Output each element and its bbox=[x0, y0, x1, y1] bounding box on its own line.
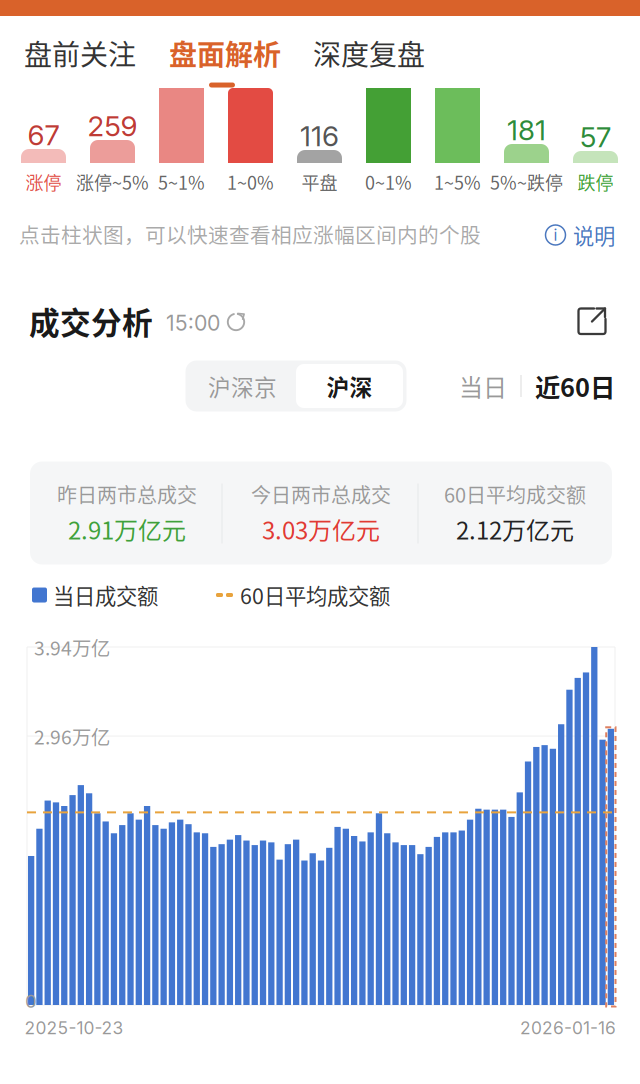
staticText: 当日 bbox=[459, 369, 507, 403]
staticText: 3.03万亿元 bbox=[262, 512, 380, 546]
staticText: 0 bbox=[25, 990, 37, 1012]
staticText: 平盘 bbox=[301, 169, 337, 195]
button[interactable]: 盘前关注 bbox=[12, 22, 148, 84]
staticText: 涨停~5% bbox=[76, 169, 149, 195]
button[interactable]: 5~1% bbox=[159, 83, 204, 163]
button[interactable]: 当日 bbox=[453, 364, 513, 408]
staticText: 沪深京 bbox=[208, 370, 277, 402]
staticText: 1~5% bbox=[434, 169, 481, 195]
staticText: 60日平均成交额 bbox=[240, 580, 390, 610]
button[interactable]: 深度复盘 bbox=[301, 22, 437, 84]
button[interactable]: i bbox=[537, 215, 623, 255]
staticText: 说明 bbox=[573, 220, 615, 250]
staticText: 2026-01-16 bbox=[520, 1017, 616, 1038]
staticText: 当日成交额 bbox=[53, 580, 158, 610]
button[interactable]: 涨停 bbox=[21, 149, 66, 163]
staticText: 259 bbox=[87, 109, 137, 143]
staticText: 近60日 bbox=[535, 368, 615, 404]
staticText: 116 bbox=[300, 119, 339, 153]
button[interactable]: 1~0% bbox=[228, 88, 273, 163]
staticText: 60日平均成交额 bbox=[444, 480, 586, 509]
button[interactable]: 涨停~5% bbox=[90, 140, 135, 163]
staticText: 2.12万亿元 bbox=[456, 512, 574, 546]
staticText: 181 bbox=[507, 113, 546, 147]
staticText: 昨日两市总成交 bbox=[57, 480, 197, 509]
staticText: 今日两市总成交 bbox=[251, 480, 391, 509]
staticText: 沪深 bbox=[326, 370, 372, 402]
staticText: 0~1% bbox=[365, 169, 412, 195]
button[interactable]: 平盘 bbox=[297, 150, 342, 163]
staticText: i bbox=[553, 225, 557, 245]
staticText: 2.91万亿元 bbox=[68, 512, 186, 546]
button[interactable]: 1~5% bbox=[435, 83, 480, 163]
staticText: 15:00 bbox=[166, 310, 220, 336]
staticText: 2.96万亿 bbox=[34, 722, 110, 750]
staticText: 跌停 bbox=[577, 169, 613, 195]
button[interactable]: 近60日 bbox=[533, 364, 617, 408]
button[interactable]: 沪深 bbox=[296, 364, 403, 408]
staticText: 3.94万亿 bbox=[34, 633, 110, 661]
staticText: 5~1% bbox=[158, 169, 205, 195]
staticText: 2025-10-23 bbox=[24, 1017, 123, 1038]
staticText: 深度复盘 bbox=[313, 33, 425, 73]
staticText: 67 bbox=[27, 118, 59, 152]
staticText: 5%~跌停 bbox=[490, 169, 563, 195]
staticText: 57 bbox=[580, 120, 611, 154]
button[interactable]: 5%~跌停 bbox=[504, 144, 549, 163]
button[interactable]: 分享 bbox=[575, 304, 609, 338]
staticText: 点击柱状图，可以快速查看相应涨幅区间内的个股 bbox=[19, 219, 481, 249]
button[interactable]: 跌停 bbox=[573, 151, 618, 163]
button[interactable]: 0~1% bbox=[366, 83, 411, 163]
staticText: 成交分析 bbox=[29, 299, 153, 343]
button[interactable]: 沪深京 bbox=[189, 364, 296, 408]
staticText: 1~0% bbox=[227, 169, 274, 195]
staticText: 盘面解析 bbox=[169, 33, 281, 73]
staticText: 盘前关注 bbox=[24, 33, 136, 73]
button[interactable]: 盘面解析 bbox=[157, 22, 293, 84]
staticText: 涨停 bbox=[25, 169, 61, 195]
